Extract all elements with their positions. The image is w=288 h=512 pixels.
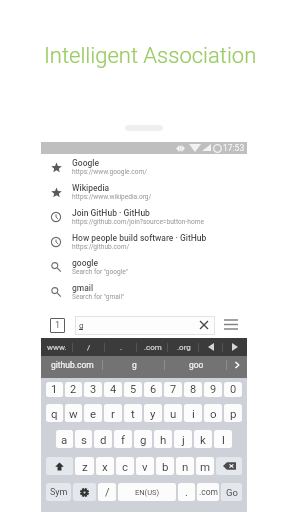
button[interactable]: m [196,457,214,475]
button[interactable]: / [98,483,116,501]
button[interactable]: k [194,430,212,448]
button[interactable]: a [56,430,73,448]
staticText: z [82,460,88,473]
button[interactable]: goo [165,356,227,378]
staticText: 3 [90,383,97,396]
button[interactable]: r [104,404,122,422]
button[interactable]: . [178,483,195,501]
button[interactable]: .org [168,338,199,356]
staticText: p [230,407,237,420]
staticText: h [160,433,167,446]
button[interactable]: / [73,338,105,356]
button[interactable]: t [124,404,142,422]
button[interactable]: 4 [104,382,122,397]
staticText: t [131,407,135,420]
staticText: r [111,407,115,420]
button[interactable]: o [204,404,222,422]
button[interactable]: g [103,356,165,378]
staticText: github.com [51,360,94,370]
staticText: 9 [210,383,217,396]
staticText: gmail [72,283,94,293]
button[interactable]: g [134,430,152,448]
staticText: g [132,360,137,370]
button[interactable]: 1 [46,382,63,397]
button[interactable]: h [154,430,172,448]
staticText: https://www.wikipedia.org/ [72,193,152,201]
button[interactable]: More suggestions [227,356,247,378]
button[interactable]: Sym [46,483,71,501]
staticText: goo [189,360,204,370]
staticText: 17:53 [223,143,245,153]
staticText: 4 [110,383,117,396]
staticText: https://www.google.com/ [72,168,148,176]
button[interactable]: 0 [224,382,242,397]
button[interactable]: w [65,404,82,422]
staticText: https://github.com/join?source=button-ho… [72,218,204,226]
staticText: s [81,433,87,446]
button[interactable]: .com [197,483,219,501]
button[interactable]: q [46,404,63,422]
button[interactable]: google [41,254,247,279]
button[interactable]: j [174,430,192,448]
button[interactable]: 7 [164,382,182,397]
button[interactable]: c [116,457,134,475]
staticText: Google [72,158,100,168]
staticText: g [140,433,147,446]
staticText: i [192,407,195,420]
staticText: / [87,343,91,352]
button[interactable]: d [94,430,112,448]
button[interactable]: n [176,457,194,475]
button[interactable]: Backspace [216,457,242,475]
button[interactable]: z [75,457,94,475]
button[interactable]: .com [137,338,168,356]
staticText: .com [199,487,218,497]
button[interactable]: 9 [204,382,222,397]
button[interactable]: . [105,338,137,356]
staticText: e [90,407,97,420]
button[interactable]: github.com [41,356,103,378]
button[interactable]: Tabs [50,318,65,333]
button[interactable]: i [184,404,202,422]
button[interactable]: 2 [65,382,82,397]
button[interactable]: Next [223,338,247,356]
button[interactable]: gmail [41,279,247,304]
button[interactable]: www. [41,338,73,356]
button[interactable]: EN(US) [118,483,176,501]
button[interactable]: p [224,404,242,422]
button[interactable]: y [144,404,162,422]
button[interactable]: 8 [184,382,202,397]
button[interactable]: g [75,316,215,335]
button[interactable]: Menu [220,314,242,334]
staticText: Sym [50,487,68,498]
button[interactable]: Shift [46,457,73,475]
button[interactable]: l [214,430,232,448]
button[interactable]: x [96,457,114,475]
staticText: How people build software · GitHub [72,233,207,243]
button[interactable]: u [164,404,182,422]
button[interactable]: Join GitHub · GitHub [41,204,247,229]
staticText: b [162,460,169,473]
button[interactable]: Clear [196,317,212,333]
button[interactable]: Settings [73,483,96,501]
button[interactable]: v [136,457,154,475]
staticText: q [51,407,58,420]
button[interactable]: Previous [199,338,223,356]
button[interactable]: How people build software · GitHub [41,229,247,254]
button[interactable]: Wikipedia [41,179,247,204]
button[interactable]: e [84,404,102,422]
button[interactable]: f [114,430,132,448]
button[interactable]: Go [221,483,242,501]
staticText: https://github.com/ [72,243,130,251]
button[interactable]: 5 [124,382,142,397]
staticText: a [61,433,68,446]
button[interactable]: s [75,430,92,448]
button[interactable]: b [156,457,174,475]
button[interactable]: Google [41,154,247,179]
staticText: u [170,407,177,420]
staticText: j [182,433,185,446]
staticText: d [100,433,107,446]
staticText: . [120,343,123,352]
button[interactable]: 3 [84,382,102,397]
button[interactable]: 6 [144,382,162,397]
staticText: w [69,407,78,420]
